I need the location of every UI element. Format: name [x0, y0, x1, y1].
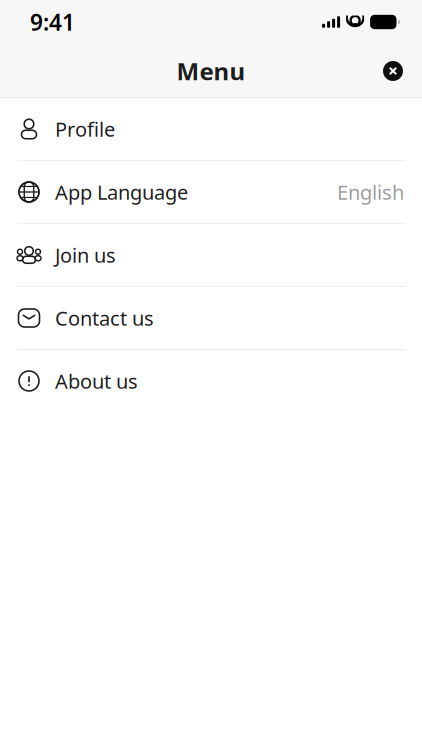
staticText: Contact us: [55, 305, 154, 331]
staticText: About us: [55, 368, 138, 394]
button[interactable]: Join us: [0, 224, 422, 287]
button[interactable]: Close: [371, 49, 415, 93]
staticText: Join us: [55, 242, 116, 268]
staticText: App Language: [55, 179, 188, 205]
button[interactable]: About us: [0, 350, 422, 413]
staticText: Profile: [55, 116, 115, 142]
staticText: 9:41: [30, 7, 75, 37]
button[interactable]: App Language: [0, 161, 422, 224]
button[interactable]: Contact us: [0, 287, 422, 350]
staticText: English: [337, 179, 404, 205]
button[interactable]: Profile: [0, 98, 422, 161]
staticText: Menu: [176, 55, 245, 87]
